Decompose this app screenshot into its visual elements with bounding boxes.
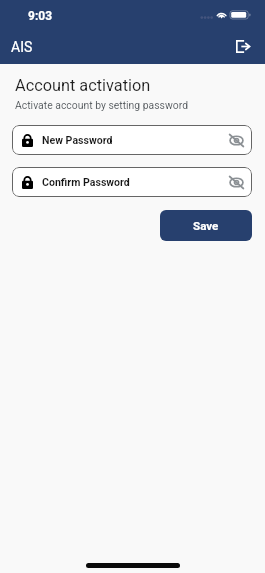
button[interactable]: Confirm Password	[12, 167, 252, 197]
button[interactable]: Show password	[224, 128, 248, 152]
staticText: Confirm Password	[42, 176, 130, 188]
staticText: AIS	[11, 39, 33, 55]
staticText: Account activation	[15, 76, 151, 95]
staticText: Save	[193, 219, 219, 233]
button[interactable]: New Password	[12, 125, 252, 155]
button[interactable]: Show password	[224, 170, 248, 194]
button[interactable]: Log out	[231, 35, 254, 58]
staticText: Activate account by setting password	[15, 99, 188, 111]
staticText: New Password	[42, 134, 113, 146]
button[interactable]: Save	[160, 210, 252, 241]
staticText: 9:03	[28, 9, 53, 23]
